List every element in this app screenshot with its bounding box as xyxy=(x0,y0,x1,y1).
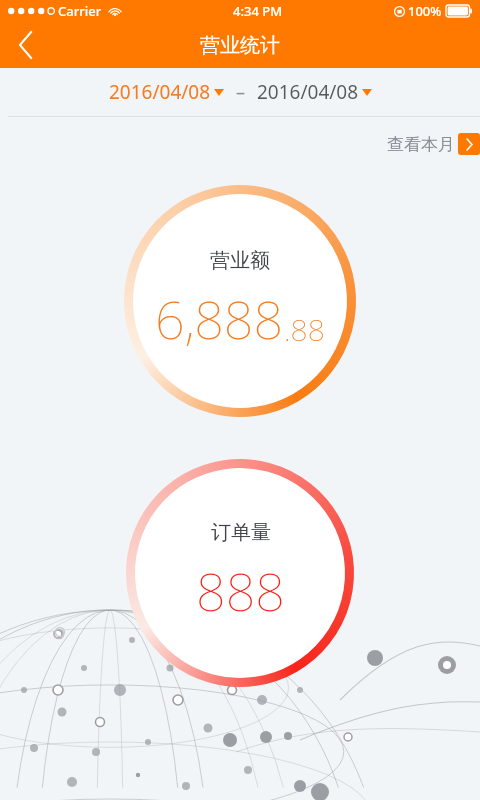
staticText: 营业额 xyxy=(210,248,270,273)
staticText: 100% xyxy=(408,2,442,20)
button[interactable]: 2016/04/08 xyxy=(257,75,372,109)
staticText: 888 xyxy=(196,555,285,626)
staticText: 查看本月 xyxy=(387,134,455,155)
staticText: 订单量 xyxy=(211,520,271,545)
button[interactable]: Back xyxy=(0,22,52,68)
staticText: Carrier xyxy=(58,2,102,20)
staticText: .88 xyxy=(284,309,325,350)
staticText: 2016/04/08 xyxy=(257,79,359,105)
staticText: 6,888 xyxy=(155,283,284,354)
button[interactable]: 2016/04/08 xyxy=(109,75,224,109)
staticText: 营业统计 xyxy=(200,33,280,58)
staticText: – xyxy=(236,80,245,105)
button[interactable]: 订单量 xyxy=(126,459,354,687)
button[interactable]: 查看本月 xyxy=(387,133,480,155)
button[interactable]: 营业额 xyxy=(124,185,356,417)
staticText: 2016/04/08 xyxy=(109,79,211,105)
staticText: 4:34 PM xyxy=(233,2,283,20)
